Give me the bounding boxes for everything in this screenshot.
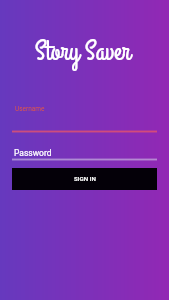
button[interactable]: Username input [12,96,157,133]
staticText: Username [15,105,45,113]
button[interactable]: Password input [12,140,157,165]
staticText: Password [14,148,52,158]
button[interactable]: SIGN IN [12,168,157,190]
staticText: Story Saver [0,33,167,70]
staticText: SIGN IN [74,175,96,182]
